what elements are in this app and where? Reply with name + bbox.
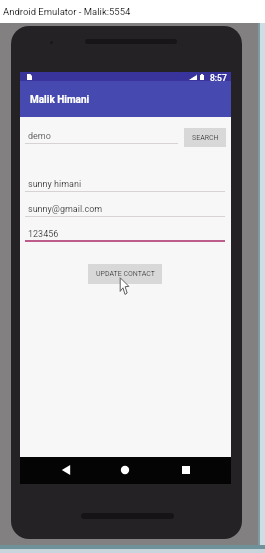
- button[interactable]: Recent apps: [176, 460, 196, 480]
- staticText: 8:57: [210, 73, 227, 82]
- staticText: Android Emulator - Malik:5554: [3, 6, 131, 17]
- button[interactable]: sunny himani: [25, 177, 225, 192]
- staticText: SEARCH: [192, 134, 219, 142]
- button[interactable]: Back: [56, 460, 76, 480]
- staticText: Malik Himani: [30, 94, 90, 106]
- button[interactable]: SEARCH: [184, 128, 226, 147]
- button[interactable]: UPDATE CONTACT: [88, 264, 162, 284]
- staticText: sunny himani: [28, 179, 82, 190]
- button[interactable]: demo: [25, 129, 178, 144]
- button[interactable]: sunny@gmail.com: [25, 202, 225, 217]
- staticText: sunny@gmail.com: [28, 204, 103, 215]
- button[interactable]: Home: [115, 460, 135, 480]
- staticText: 123456: [28, 229, 59, 240]
- staticText: UPDATE CONTACT: [96, 270, 155, 278]
- button[interactable]: 123456: [25, 227, 225, 242]
- staticText: demo: [28, 131, 51, 142]
